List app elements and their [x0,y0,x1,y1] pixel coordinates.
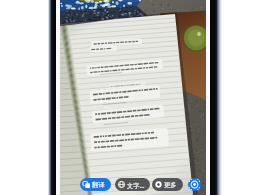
button[interactable]: Lens search [188,178,201,191]
staticText: 翻译 [92,181,105,189]
button[interactable]: Language [115,178,150,191]
button[interactable]: Translate [80,178,111,191]
button[interactable]: More [152,178,183,191]
staticText: 更多 [164,181,177,189]
staticText: 文字… [127,181,145,189]
